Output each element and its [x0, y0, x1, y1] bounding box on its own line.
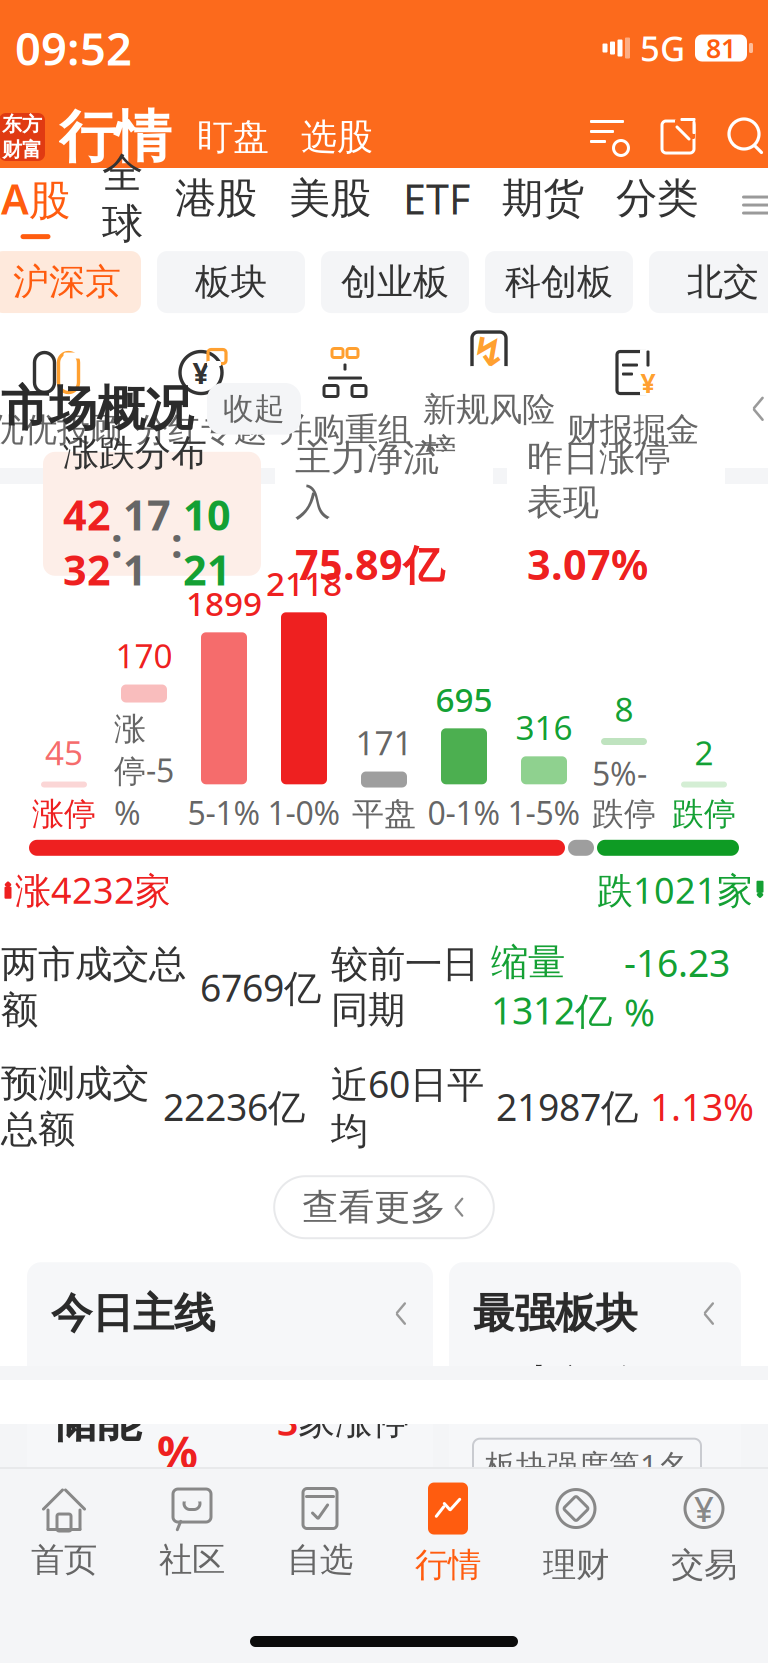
button[interactable]: 行情 [384, 1477, 512, 1589]
staticText: 09:52 [15, 18, 132, 78]
staticText: 并购重组 [279, 409, 411, 450]
button[interactable]: 首页 [0, 1477, 128, 1589]
staticText: 美股 [289, 173, 371, 224]
staticText: 平盘 [352, 794, 416, 834]
button[interactable]: 科创板 [485, 251, 633, 313]
staticText: ¥ [192, 353, 209, 392]
staticText: ↯ [472, 329, 506, 375]
staticText: 行情 [415, 1544, 481, 1585]
staticText: 1-0% [267, 791, 340, 834]
button[interactable]: 理财 [512, 1477, 640, 1589]
staticText: 3 [277, 1396, 298, 1446]
staticText: 1.13% [650, 1082, 754, 1131]
staticText: 最强板块 [473, 1288, 637, 1339]
staticText: 3.07% [527, 537, 648, 591]
staticText: 5G [640, 25, 685, 71]
staticText: 涨4232家 [15, 866, 171, 914]
button[interactable]: 沪深京 [0, 251, 141, 313]
staticText: 财报掘金 [567, 409, 699, 450]
staticText: 主力净流入 [295, 436, 439, 524]
button[interactable]: 美股 [273, 163, 387, 247]
button[interactable]: 全球 [86, 163, 159, 247]
button[interactable]: ¥ [561, 347, 705, 450]
staticText: ETF [403, 171, 470, 226]
button[interactable]: 社区 [128, 1477, 256, 1589]
button[interactable]: 港股 [159, 163, 273, 247]
staticText: 财富 [2, 137, 42, 162]
staticText: 0-1% [427, 791, 500, 834]
staticText: 创业板 [341, 260, 449, 304]
staticText: 期货 [502, 173, 584, 224]
button[interactable]: 期货 [486, 163, 600, 247]
button[interactable]: 自选 [256, 1477, 384, 1589]
button[interactable]: 最强板块 [449, 1262, 741, 1484]
button[interactable]: 板块 [157, 251, 305, 313]
staticText: 81 [706, 30, 736, 66]
staticText: 港股 [175, 173, 257, 224]
button[interactable]: ¥ [640, 1477, 768, 1589]
button[interactable]: 全部分类 [733, 175, 768, 235]
staticText: 2118 [266, 561, 342, 605]
staticText: 今日主线 [51, 1288, 215, 1339]
staticText: 储能 [51, 1393, 141, 1449]
button[interactable]: ETF [387, 163, 486, 247]
staticText: : [111, 514, 123, 569]
staticText: 北交 [687, 260, 759, 304]
button[interactable]: 主力净流入 [275, 452, 493, 576]
staticText: 1-5% [507, 791, 580, 834]
staticText: 盯盘 [197, 115, 269, 159]
staticText: 缩量1312亿 [491, 939, 612, 1035]
staticText: 板块 [195, 260, 267, 304]
button[interactable]: 选股 [293, 115, 381, 159]
staticText: ¥ [640, 365, 655, 400]
staticText: 涨跌分布 [63, 431, 207, 475]
staticText: 22236亿 [163, 1082, 305, 1131]
staticText: 4.50% [313, 1632, 393, 1663]
button[interactable]: 分类 [600, 163, 714, 247]
button[interactable]: 今日主线 [27, 1262, 433, 1484]
staticText: 涨停-5% [114, 709, 174, 834]
staticText: 社区 [159, 1539, 225, 1580]
button[interactable]: 分享 [655, 114, 701, 160]
button[interactable]: ¥ [129, 347, 273, 450]
staticText: 跌1021家 [597, 866, 753, 914]
staticText: 优优投顾 [0, 409, 123, 450]
staticText: 理财 [543, 1544, 609, 1585]
button[interactable]: 并购重组 [273, 347, 417, 450]
button[interactable]: 优优投顾 [0, 347, 129, 450]
staticText: 较前一日同期 [331, 941, 479, 1033]
staticText: 科创板 [505, 260, 613, 304]
staticText: 预测成交总额 [1, 1061, 149, 1152]
button[interactable]: 北交 [649, 251, 768, 313]
button[interactable]: 盯盘设置 [587, 114, 633, 160]
staticText: 首页 [31, 1539, 97, 1580]
staticText: 5%-跌停 [592, 752, 656, 834]
button[interactable]: 昨日涨停表现 [507, 452, 725, 576]
staticText: 1021 [183, 487, 231, 597]
staticText: 170 [115, 633, 172, 677]
button[interactable]: 盯盘 [189, 115, 277, 159]
button[interactable]: 查看更多 [274, 1176, 494, 1238]
staticText: 昨日涨停表现 [527, 436, 671, 524]
button[interactable]: 市场概况 [0, 366, 768, 452]
button[interactable]: 涨跌分布 [43, 452, 261, 576]
staticText: 1.75% [157, 1361, 248, 1481]
staticText: 全球 [102, 148, 143, 249]
staticText: 吉鑫科技 [473, 1513, 584, 1605]
staticText: 家涨停 [298, 1398, 409, 1444]
staticText: 行情 [59, 103, 171, 171]
staticText: A股 [1, 171, 70, 226]
staticText: 市场概况 [1, 379, 193, 438]
staticText: 9.95% [601, 1533, 717, 1586]
staticText: 交易 [671, 1544, 737, 1585]
staticText: 45 [45, 730, 83, 774]
button[interactable]: A股 [0, 163, 86, 247]
button[interactable]: 搜索 [723, 114, 768, 160]
staticText: 板块强度第1名 [485, 1445, 689, 1485]
button[interactable]: ↯ [417, 327, 561, 471]
staticText: 8 [614, 687, 633, 731]
staticText: 新规风险榜 [423, 389, 555, 471]
staticText: ¥ [694, 1485, 714, 1531]
button[interactable]: 创业板 [321, 251, 469, 313]
